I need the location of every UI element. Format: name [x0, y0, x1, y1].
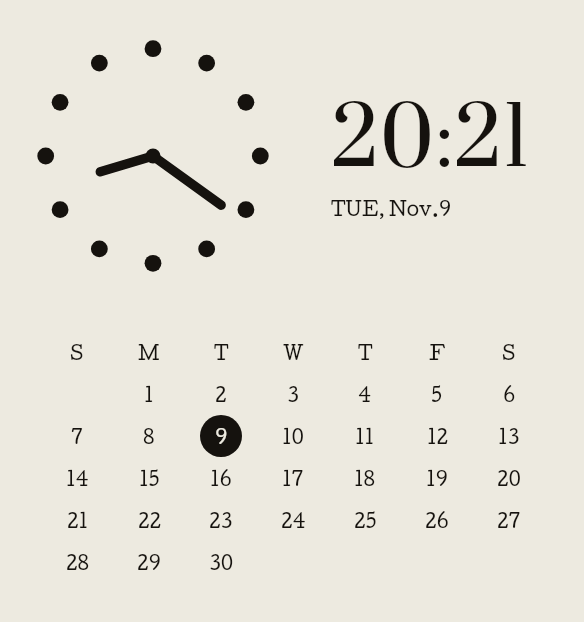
staticText: T	[214, 341, 229, 364]
button[interactable]: 7	[56, 415, 98, 457]
staticText: 16	[210, 467, 232, 490]
staticText: 6	[503, 383, 515, 406]
button[interactable]: 3	[272, 373, 314, 415]
button[interactable]: 28	[56, 541, 98, 583]
staticText: S	[70, 341, 84, 364]
staticText: 26	[425, 509, 449, 532]
button[interactable]: 4	[344, 373, 386, 415]
button[interactable]: 22	[128, 499, 170, 541]
button[interactable]: 16	[200, 457, 242, 499]
button[interactable]: 15	[128, 457, 170, 499]
staticText: 9	[215, 425, 228, 448]
staticText: 19	[426, 467, 448, 490]
staticText: T	[358, 341, 373, 364]
staticText: 12	[427, 425, 448, 448]
staticText: W	[283, 341, 304, 364]
staticText: 23	[209, 509, 233, 532]
staticText: TUE, Nov.9	[331, 197, 451, 220]
staticText: 2	[215, 383, 227, 406]
button[interactable]: 6	[488, 373, 530, 415]
button[interactable]: 10	[272, 415, 314, 457]
staticText: F	[429, 341, 445, 364]
button[interactable]: 17	[272, 457, 314, 499]
button[interactable]: 13	[488, 415, 530, 457]
staticText: 20	[497, 467, 521, 490]
button[interactable]: 18	[344, 457, 386, 499]
button[interactable]: 2	[200, 373, 242, 415]
button[interactable]: 25	[344, 499, 386, 541]
staticText: 22	[138, 509, 161, 532]
button[interactable]: 12	[416, 415, 458, 457]
button[interactable]: 20	[488, 457, 530, 499]
button[interactable]: 8	[128, 415, 170, 457]
button[interactable]: 19	[416, 457, 458, 499]
staticText: 1	[144, 383, 154, 406]
button[interactable]: 30	[200, 541, 242, 583]
button[interactable]: 29	[128, 541, 170, 583]
button[interactable]: 11	[344, 415, 386, 457]
button[interactable]: 5	[416, 373, 458, 415]
staticText: 15	[139, 467, 160, 490]
staticText: 27	[497, 509, 521, 532]
staticText: 14	[66, 467, 89, 490]
staticText: 25	[354, 509, 377, 532]
button[interactable]: 21	[56, 499, 98, 541]
staticText: 13	[498, 425, 520, 448]
staticText: M	[138, 341, 160, 364]
staticText: 17	[282, 467, 304, 490]
staticText: 30	[209, 551, 234, 574]
staticText: 7	[71, 425, 83, 448]
staticText: 3	[287, 383, 299, 406]
button[interactable]: 14	[56, 457, 98, 499]
button[interactable]: 27	[488, 499, 530, 541]
staticText: 10	[282, 425, 305, 448]
staticText: 21	[67, 509, 88, 532]
staticText: 20:21	[331, 88, 530, 195]
button[interactable]: 9	[200, 415, 242, 457]
button[interactable]: 24	[272, 499, 314, 541]
staticText: 5	[431, 383, 443, 406]
button[interactable]: 1	[128, 373, 170, 415]
button[interactable]: 26	[416, 499, 458, 541]
button[interactable]: 23	[200, 499, 242, 541]
staticText: 24	[281, 509, 306, 532]
staticText: 29	[137, 551, 161, 574]
button[interactable]: Analog clock	[45, 48, 261, 264]
staticText: S	[502, 341, 516, 364]
staticText: 28	[66, 551, 89, 574]
staticText: 4	[358, 383, 372, 406]
staticText: 8	[143, 425, 155, 448]
button[interactable]: 20:21	[331, 88, 551, 220]
staticText: 11	[355, 425, 375, 448]
staticText: 18	[354, 467, 376, 490]
